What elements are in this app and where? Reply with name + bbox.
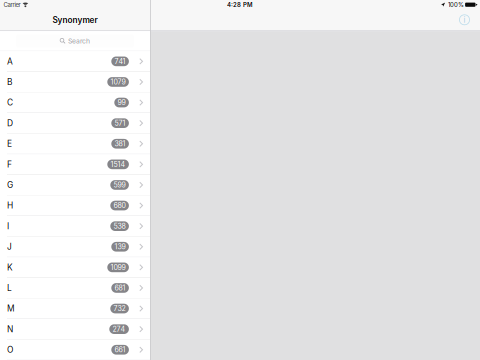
- staticText: O: [7, 345, 13, 355]
- staticText: Search: [68, 37, 90, 45]
- staticText: I: [7, 221, 9, 231]
- button[interactable]: A: [0, 51, 150, 72]
- button[interactable]: B: [0, 72, 150, 92]
- staticText: E: [7, 139, 12, 149]
- button[interactable]: K: [0, 257, 150, 278]
- button[interactable]: C: [0, 92, 150, 113]
- staticText: C: [7, 97, 13, 108]
- staticText: 661: [115, 345, 126, 354]
- staticText: 681: [115, 284, 126, 292]
- button[interactable]: M: [0, 298, 150, 319]
- staticText: Synonymer: [52, 15, 97, 25]
- staticText: F: [7, 159, 12, 169]
- staticText: G: [7, 180, 13, 190]
- button[interactable]: J: [0, 237, 150, 257]
- button[interactable]: F: [0, 154, 150, 175]
- staticText: 680: [114, 201, 126, 210]
- button[interactable]: E: [0, 134, 150, 154]
- button[interactable]: G: [0, 175, 150, 195]
- staticText: 139: [115, 242, 126, 251]
- staticText: A: [7, 56, 13, 66]
- staticText: 274: [113, 325, 126, 333]
- staticText: 571: [115, 119, 126, 127]
- button[interactable]: I: [0, 216, 150, 237]
- staticText: J: [7, 242, 12, 252]
- staticText: 381: [115, 139, 126, 148]
- staticText: K: [7, 262, 13, 272]
- button[interactable]: Search: [0, 31, 150, 51]
- staticText: Carrier: [3, 1, 20, 8]
- staticText: D: [7, 118, 13, 128]
- button[interactable]: H: [0, 195, 150, 216]
- staticText: L: [7, 283, 12, 293]
- staticText: M: [7, 303, 15, 314]
- staticText: 1514: [111, 160, 126, 169]
- staticText: B: [7, 77, 12, 87]
- staticText: 1099: [111, 263, 126, 272]
- button[interactable]: Info: [455, 14, 474, 30]
- staticText: N: [7, 324, 13, 334]
- staticText: 599: [114, 181, 126, 189]
- staticText: 741: [115, 57, 126, 66]
- staticText: H: [7, 200, 13, 211]
- staticText: 100%: [448, 1, 464, 8]
- staticText: 538: [114, 222, 126, 230]
- staticText: 732: [114, 304, 126, 313]
- staticText: 99: [118, 98, 126, 107]
- staticText: i: [463, 15, 465, 25]
- staticText: 4:28 PM: [227, 1, 253, 8]
- button[interactable]: D: [0, 113, 150, 134]
- button[interactable]: O: [0, 340, 150, 360]
- button[interactable]: N: [0, 319, 150, 340]
- button[interactable]: L: [0, 278, 150, 298]
- staticText: 1079: [111, 78, 126, 86]
